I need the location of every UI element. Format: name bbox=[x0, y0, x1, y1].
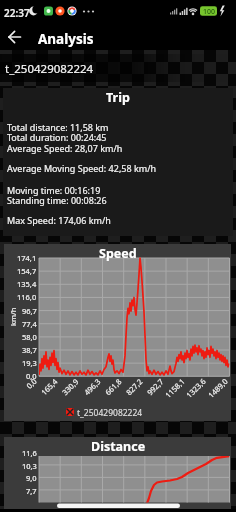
staticText: Speed bbox=[99, 245, 137, 262]
staticText: 992,7 bbox=[145, 376, 166, 397]
staticText: 7,7 bbox=[26, 486, 37, 496]
staticText: 116,0 bbox=[17, 292, 37, 302]
staticText: 9,0 bbox=[26, 473, 37, 483]
staticText: Total distance: 11,58 km bbox=[7, 121, 109, 133]
staticText: 1489,0 bbox=[206, 376, 230, 400]
staticText: Max Speed: 174,06 km/h bbox=[7, 214, 111, 226]
staticText: 165,4 bbox=[39, 376, 60, 397]
staticText: 0,0 bbox=[24, 376, 39, 391]
staticText: Analysis bbox=[38, 30, 94, 48]
staticText: 496,3 bbox=[82, 376, 103, 397]
staticText: 1158,1 bbox=[163, 376, 187, 400]
staticText: 77,4 bbox=[22, 319, 37, 329]
staticText: 0,0 bbox=[26, 371, 37, 381]
staticText: 661,8 bbox=[103, 376, 124, 397]
staticText: Average Speed: 28,07 km/h bbox=[7, 142, 123, 154]
staticText: 38,7 bbox=[22, 345, 37, 355]
staticText: 10,3 bbox=[22, 461, 37, 471]
staticText: Standing time: 00:08:26 bbox=[7, 194, 107, 206]
staticText: 11,6 bbox=[22, 448, 37, 458]
staticText: 96,7 bbox=[22, 306, 37, 316]
staticText: 22:37 bbox=[4, 6, 30, 20]
staticText: 174,1 bbox=[17, 253, 37, 263]
staticText: 827,2 bbox=[124, 376, 145, 397]
staticText: 154,7 bbox=[17, 266, 37, 276]
staticText: km/h bbox=[8, 307, 18, 326]
staticText: Average Moving Speed: 42,58 km/h bbox=[7, 162, 157, 174]
staticText: 330,9 bbox=[60, 376, 81, 397]
staticText: 19,3 bbox=[22, 358, 37, 368]
staticText: 1323,6 bbox=[184, 376, 208, 400]
staticText: t_250429082224 bbox=[5, 61, 94, 77]
staticText: Total duration: 00:24:45 bbox=[7, 131, 107, 143]
staticText: 58,0 bbox=[22, 332, 37, 342]
button[interactable]: t_250429082224 bbox=[0, 54, 236, 82]
staticText: Trip bbox=[106, 89, 130, 106]
button[interactable] bbox=[0, 24, 44, 50]
staticText: 100 bbox=[203, 7, 216, 17]
staticText: Distance bbox=[91, 438, 146, 455]
staticText: t_250429082224 bbox=[77, 407, 143, 419]
staticText: 135,4 bbox=[17, 279, 37, 289]
staticText: Moving time: 00:16:19 bbox=[7, 184, 101, 196]
